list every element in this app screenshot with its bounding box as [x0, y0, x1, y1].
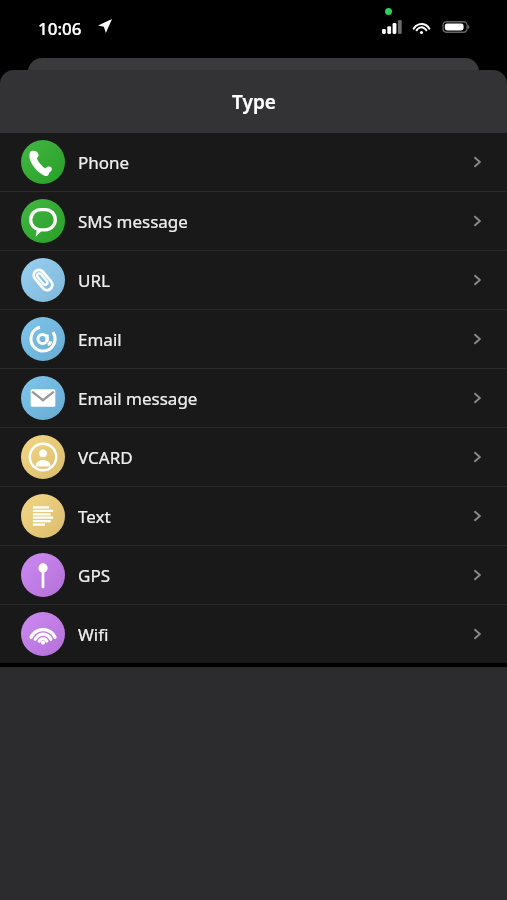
button[interactable]: SMS message	[0, 192, 507, 250]
button[interactable]: GPS	[0, 546, 507, 604]
staticText: Text	[78, 505, 111, 528]
button[interactable]: Wifi	[0, 605, 507, 663]
button[interactable]: Phone	[0, 133, 507, 191]
staticText: SMS message	[78, 210, 188, 233]
button[interactable]: URL	[0, 251, 507, 309]
staticText: Email message	[78, 387, 198, 410]
staticText: 10:06	[38, 17, 82, 40]
staticText: Phone	[78, 151, 130, 174]
staticText: Email	[78, 328, 122, 351]
button[interactable]: VCARD	[0, 428, 507, 486]
button[interactable]: Email	[0, 310, 507, 368]
staticText: URL	[78, 269, 110, 292]
staticText: GPS	[78, 564, 110, 587]
button[interactable]: Email message	[0, 369, 507, 427]
button[interactable]: Text	[0, 487, 507, 545]
staticText: Wifi	[78, 623, 109, 646]
staticText: VCARD	[78, 446, 133, 469]
staticText: Type	[232, 89, 276, 115]
